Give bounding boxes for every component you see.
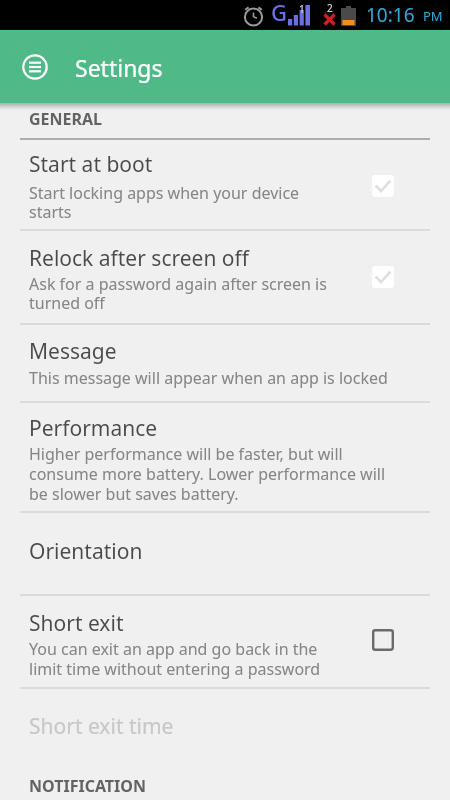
staticText: 1 (299, 2, 305, 16)
staticText: 10:16 (366, 2, 415, 28)
staticText: Message (29, 337, 117, 366)
staticText: Start at boot (29, 150, 153, 179)
staticText: 2 (327, 1, 333, 15)
staticText: This message will appear when an app is … (29, 367, 388, 389)
staticText: Start locking apps when your device star… (29, 182, 300, 223)
button[interactable] (0, 513, 450, 595)
button[interactable] (0, 689, 450, 774)
button[interactable] (0, 403, 450, 512)
staticText: Performance (29, 414, 158, 443)
staticText: You can exit an app and go back in the l… (29, 638, 321, 679)
staticText: Relock after screen off (29, 244, 250, 273)
button[interactable] (0, 325, 450, 402)
staticText: Orientation (29, 537, 143, 566)
staticText: Higher performance will be faster, but w… (29, 443, 386, 504)
staticText: Settings (75, 52, 163, 83)
staticText: G (271, 0, 287, 27)
staticText: Short exit (29, 609, 124, 638)
button[interactable] (0, 140, 450, 230)
staticText: NOTIFICATION (29, 775, 146, 797)
staticText: Short exit time (29, 712, 174, 741)
button[interactable] (0, 231, 450, 324)
staticText: PM (423, 7, 443, 25)
button[interactable] (13, 45, 57, 89)
staticText: GENERAL (29, 108, 103, 130)
staticText: Ask for a password again after screen is… (29, 273, 327, 314)
button[interactable] (0, 596, 450, 688)
